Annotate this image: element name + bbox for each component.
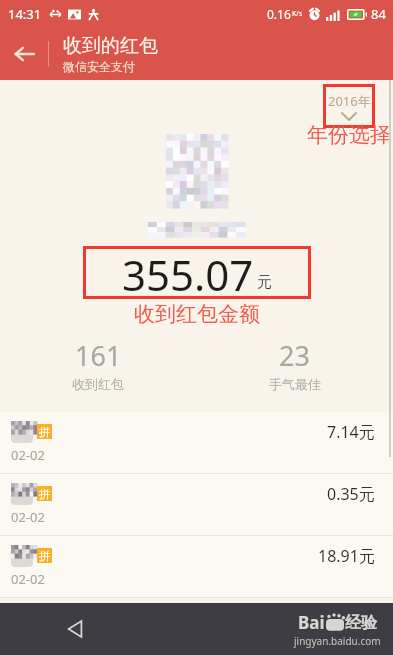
staticText: 7.14元 xyxy=(327,421,375,443)
staticText: 微信安全支付 xyxy=(63,59,135,74)
staticText: 14:31 xyxy=(8,5,42,23)
staticText: 84 xyxy=(371,5,386,23)
staticText: 拼 xyxy=(39,549,50,563)
staticText: 2016年 xyxy=(328,92,371,110)
button[interactable]: Back xyxy=(0,28,48,80)
staticText: 拼 xyxy=(39,487,50,501)
staticText: 拼 xyxy=(39,425,50,439)
staticText: 经验 xyxy=(345,613,377,633)
staticText: 0.16 xyxy=(267,6,291,22)
staticText: Bai xyxy=(298,611,325,634)
staticText: 年份选择 xyxy=(307,122,391,148)
button[interactable]: 拼 xyxy=(0,412,393,474)
staticText: 161 xyxy=(75,337,122,374)
staticText: jingyan.baidu.com xyxy=(294,634,381,648)
staticText: 02-02 xyxy=(11,446,45,464)
staticText: 收到的红包 xyxy=(63,34,158,58)
staticText: 0.35元 xyxy=(327,483,375,505)
button[interactable]: 2016年 xyxy=(323,84,375,128)
staticText: 355.07 xyxy=(122,246,254,296)
staticText: 收到红包金额 xyxy=(134,301,260,327)
staticText: 元 xyxy=(257,273,272,292)
button[interactable]: 拼 xyxy=(0,474,393,536)
staticText: 02-02 xyxy=(11,508,45,526)
staticText: 收到红包 xyxy=(72,376,124,392)
staticText: 18.91元 xyxy=(318,545,375,567)
button[interactable]: 拼 xyxy=(0,536,393,598)
staticText: K/s xyxy=(292,9,303,19)
staticText: 23 xyxy=(279,337,310,374)
button[interactable]: Back xyxy=(58,612,92,646)
staticText: 02-02 xyxy=(11,570,45,588)
staticText: 手气最佳 xyxy=(269,376,321,392)
